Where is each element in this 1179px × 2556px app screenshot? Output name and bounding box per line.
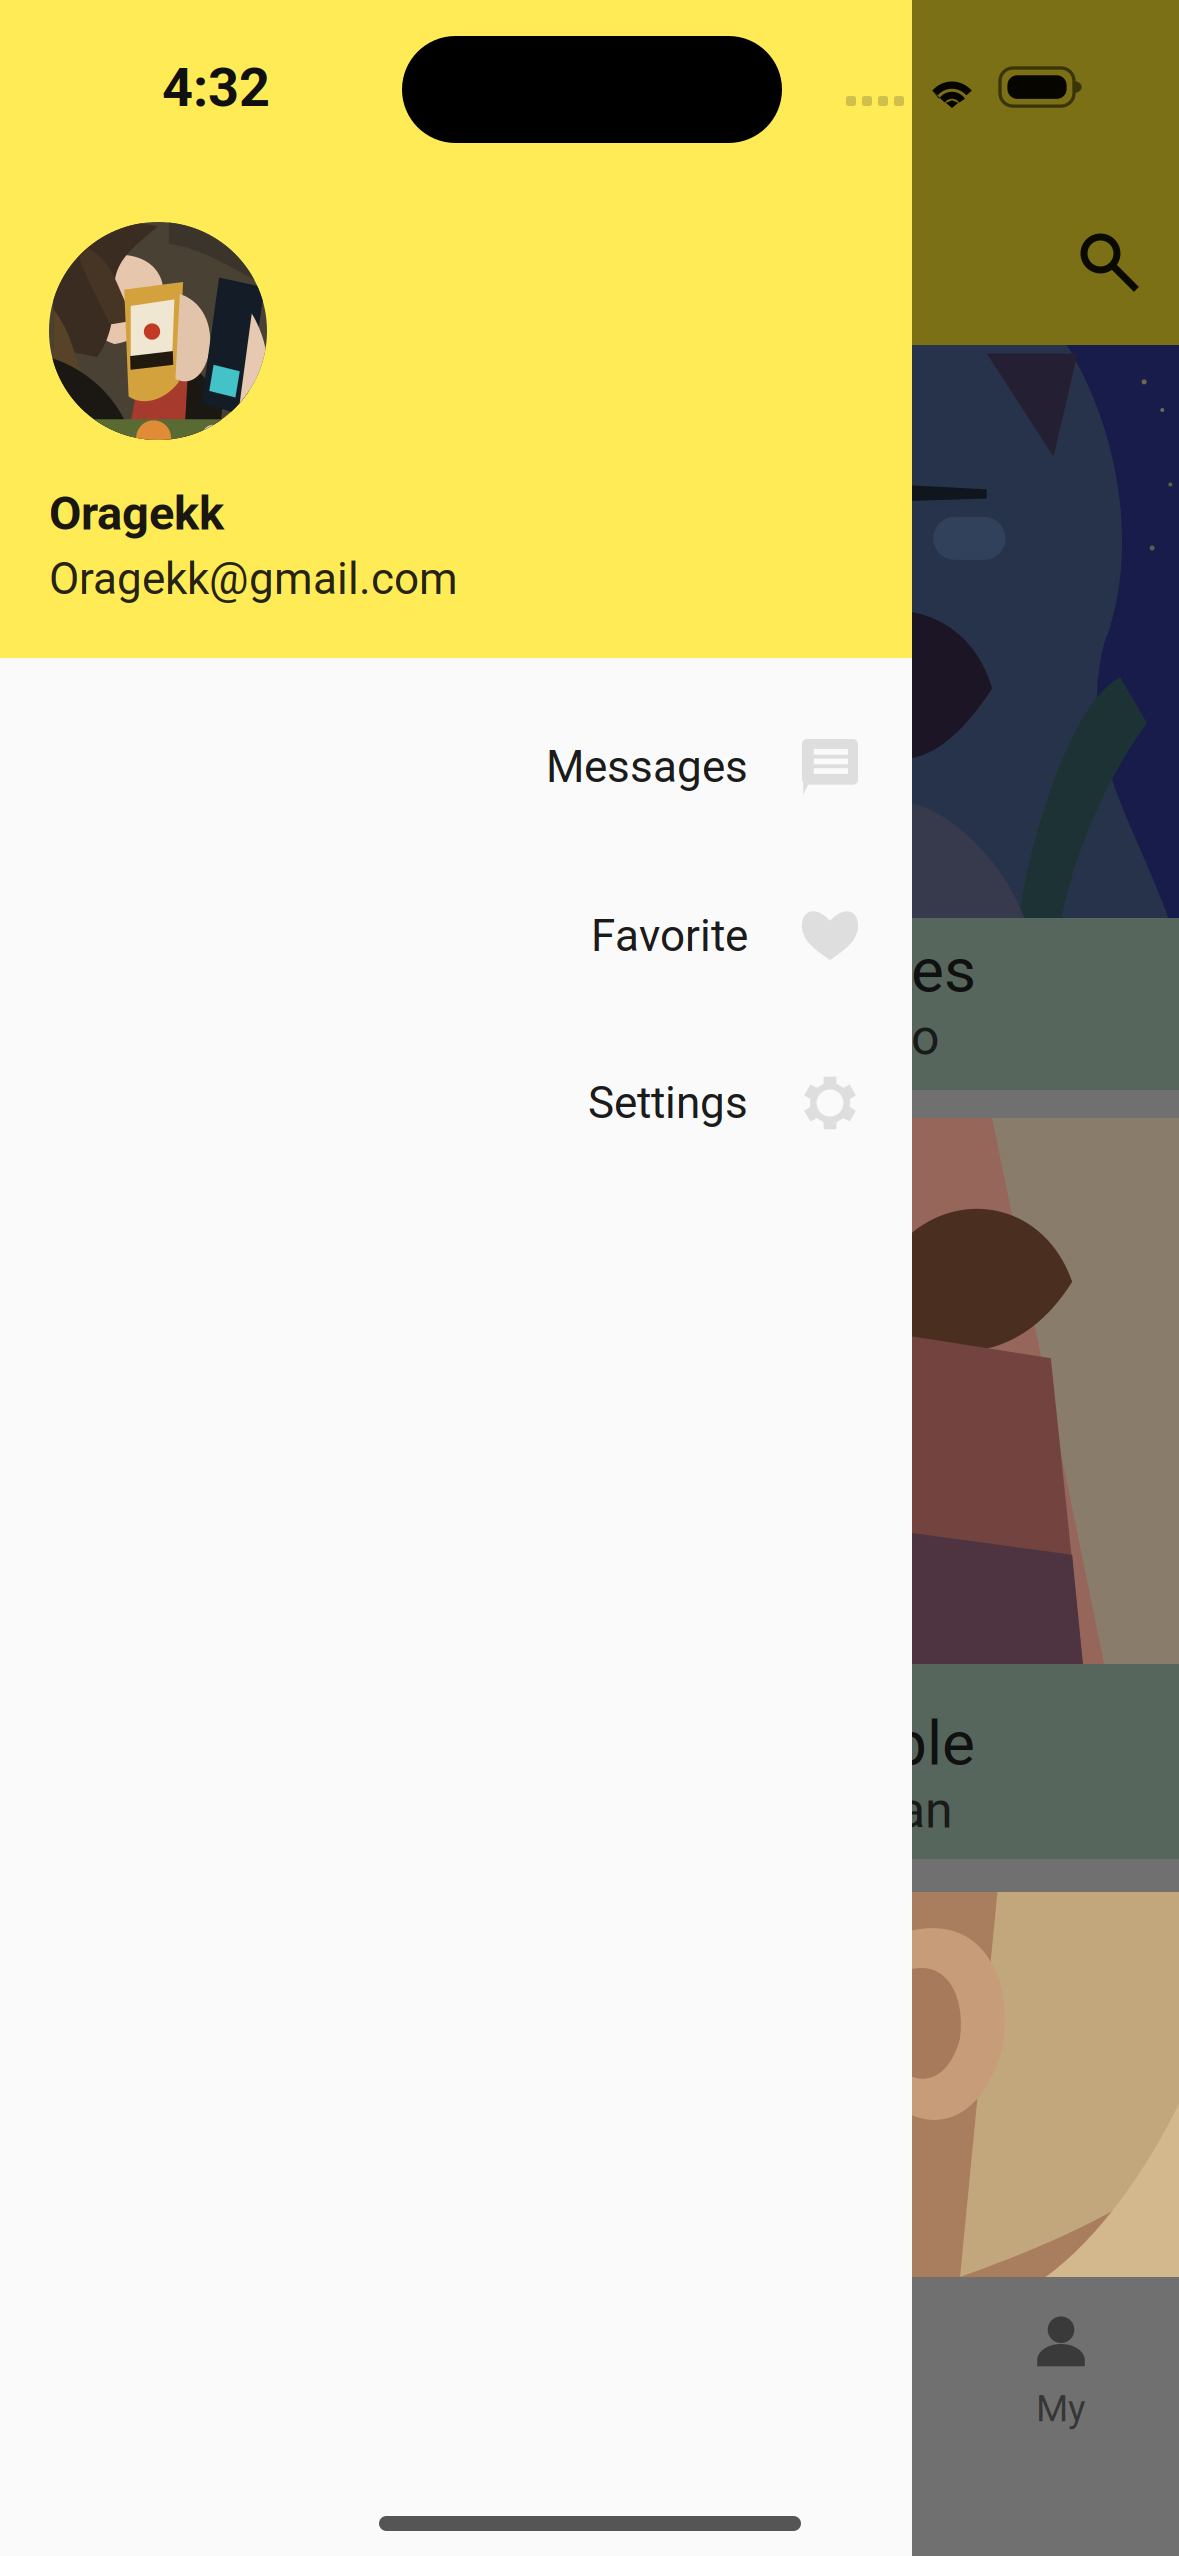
button[interactable]: Favorite [0,876,912,996]
staticText: ble [892,1707,975,1780]
button[interactable]: Messages [0,707,912,827]
staticText: an [898,1781,953,1840]
button[interactable]: My [986,2303,1136,2443]
staticText: o [911,1008,940,1067]
staticText: Settings [588,1077,748,1129]
staticText: es [911,934,976,1007]
button[interactable]: Settings [0,1043,912,1163]
staticText: My [1036,2387,1086,2430]
staticText: Oragekk@gmail.com [49,553,458,605]
staticText: Messages [546,741,748,793]
staticText: Oragekk [49,486,224,541]
button[interactable]: Search [1055,208,1165,318]
staticText: Favorite [591,910,748,962]
staticText: 4:32 [162,56,270,119]
